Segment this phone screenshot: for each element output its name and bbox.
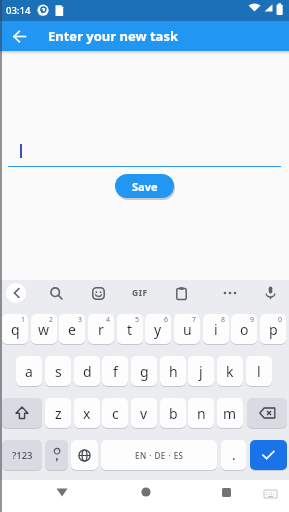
- button[interactable]: q: [2, 314, 28, 344]
- staticText: Enter your new task: [48, 27, 178, 45]
- staticText: 5: [135, 315, 140, 324]
- button[interactable]: [250, 440, 287, 470]
- staticText: e: [68, 320, 76, 339]
- staticText: Save: [132, 179, 158, 194]
- staticText: 0: [278, 315, 283, 324]
- staticText: g: [140, 362, 149, 381]
- button[interactable]: y: [145, 314, 171, 344]
- button[interactable]: [261, 487, 279, 503]
- button[interactable]: j: [188, 356, 214, 386]
- staticText: .: [232, 446, 236, 464]
- button[interactable]: t: [117, 314, 143, 344]
- staticText: 8: [221, 315, 226, 324]
- button[interactable]: [132, 480, 160, 504]
- button[interactable]: [88, 283, 108, 303]
- button[interactable]: m: [217, 398, 243, 428]
- button[interactable]: [2, 398, 42, 428]
- staticText: 6: [164, 315, 169, 324]
- button[interactable]: [171, 283, 191, 303]
- staticText: ?123: [12, 449, 33, 462]
- staticText: r: [98, 320, 104, 339]
- staticText: s: [55, 362, 62, 381]
- staticText: m: [223, 404, 237, 423]
- button[interactable]: [6, 23, 32, 49]
- staticText: i: [214, 320, 218, 339]
- button[interactable]: ?123: [2, 440, 42, 470]
- button[interactable]: f: [102, 356, 128, 386]
- staticText: q: [11, 320, 20, 339]
- staticText: v: [140, 404, 148, 423]
- staticText: f: [113, 362, 118, 381]
- button[interactable]: a: [16, 356, 42, 386]
- staticText: o: [240, 320, 249, 339]
- staticText: EN · DE · ES: [135, 450, 184, 461]
- staticText: 3: [78, 315, 83, 324]
- staticText: t: [127, 320, 133, 339]
- staticText: l: [257, 362, 261, 381]
- button[interactable]: w: [31, 314, 57, 344]
- button[interactable]: k: [217, 356, 243, 386]
- staticText: z: [55, 404, 62, 423]
- button[interactable]: [71, 440, 98, 470]
- staticText: c: [112, 404, 119, 423]
- button[interactable]: s: [45, 356, 71, 386]
- button[interactable]: b: [160, 398, 186, 428]
- button[interactable]: e: [59, 314, 85, 344]
- button[interactable]: n: [188, 398, 214, 428]
- button[interactable]: h: [160, 356, 186, 386]
- staticText: u: [183, 320, 192, 339]
- button[interactable]: i: [203, 314, 229, 344]
- staticText: j: [199, 362, 203, 381]
- button[interactable]: [45, 440, 68, 470]
- button[interactable]: x: [74, 398, 100, 428]
- button[interactable]: [260, 283, 280, 303]
- staticText: 03:14: [6, 4, 31, 17]
- staticText: n: [197, 404, 206, 423]
- staticText: a: [25, 362, 33, 381]
- button[interactable]: r: [88, 314, 114, 344]
- staticText: h: [169, 362, 178, 381]
- staticText: 2: [49, 315, 54, 324]
- button[interactable]: Save: [115, 174, 174, 198]
- button[interactable]: [212, 480, 240, 504]
- button[interactable]: o: [231, 314, 257, 344]
- button[interactable]: GIF: [128, 285, 152, 301]
- button[interactable]: g: [131, 356, 157, 386]
- button[interactable]: d: [74, 356, 100, 386]
- staticText: GIF: [132, 287, 148, 299]
- staticText: d: [83, 362, 92, 381]
- button[interactable]: p: [260, 314, 286, 344]
- staticText: p: [269, 320, 278, 339]
- staticText: x: [83, 404, 91, 423]
- button[interactable]: [48, 480, 76, 504]
- button[interactable]: v: [131, 398, 157, 428]
- button[interactable]: [247, 398, 287, 428]
- staticText: y: [154, 320, 162, 339]
- staticText: 9: [250, 315, 255, 324]
- staticText: 4: [106, 315, 111, 324]
- button[interactable]: .: [221, 440, 246, 470]
- button[interactable]: [220, 283, 240, 303]
- staticText: 1: [21, 315, 26, 324]
- button[interactable]: z: [45, 398, 71, 428]
- button[interactable]: [6, 283, 26, 303]
- button[interactable]: [46, 283, 66, 303]
- button[interactable]: c: [102, 398, 128, 428]
- button[interactable]: l: [246, 356, 272, 386]
- button[interactable]: EN · DE · ES: [101, 440, 217, 470]
- staticText: k: [226, 362, 234, 381]
- staticText: w: [38, 320, 50, 339]
- staticText: 7: [192, 315, 197, 324]
- staticText: b: [169, 404, 178, 423]
- button[interactable]: u: [174, 314, 200, 344]
